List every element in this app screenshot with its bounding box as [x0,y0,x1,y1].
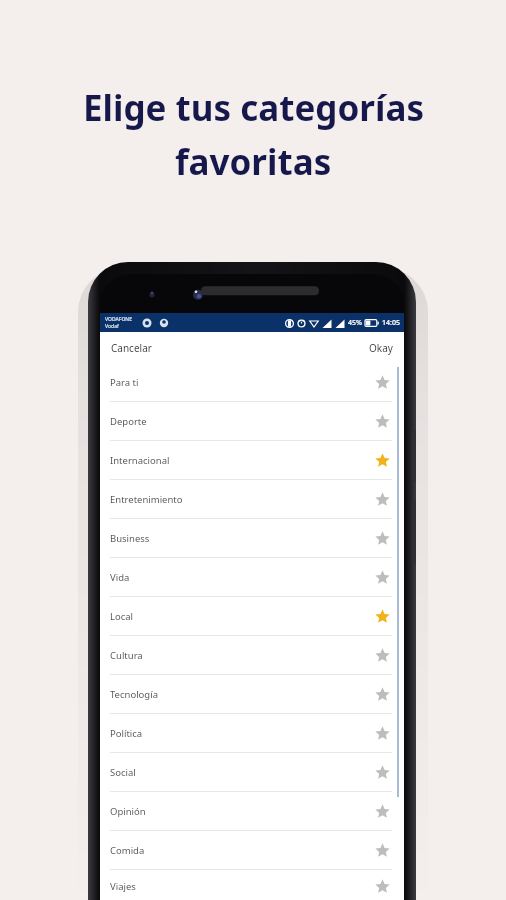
button[interactable]: Vida [100,558,404,597]
button[interactable]: Okay [367,337,395,359]
button[interactable]: Local [100,597,404,636]
staticText: Deporte [110,415,147,428]
staticText: 45% [348,318,362,328]
staticText: Local [110,610,134,623]
staticText: Vodaf [105,323,119,330]
staticText: Comida [110,844,145,857]
other: Añadir a favoritos [372,684,392,704]
button[interactable]: Tecnología [100,675,404,714]
button[interactable]: Viajes [100,870,404,900]
staticText: Vida [110,571,130,584]
staticText: Para ti [110,376,139,389]
other: Añadir a favoritos [372,411,392,431]
button[interactable]: Deporte [100,402,404,441]
staticText: Business [110,532,150,545]
other: Añadir a favoritos [372,489,392,509]
staticText: Social [110,766,136,779]
other: Quitar de favoritos [372,450,392,470]
staticText: Okay [369,341,393,355]
other: Añadir a favoritos [372,801,392,821]
staticText: 14:05 [382,318,400,328]
staticText: Cultura [110,649,143,662]
button[interactable]: Opinión [100,792,404,831]
button[interactable]: Business [100,519,404,558]
button[interactable]: Comida [100,831,404,870]
staticText: Tecnología [110,688,158,701]
button[interactable]: Entretenimiento [100,480,404,519]
staticText: Cancelar [111,341,152,355]
staticText: Entretenimiento [110,493,183,506]
other: Añadir a favoritos [372,567,392,587]
staticText: Elige tus categorías [83,84,424,132]
other: Añadir a favoritos [372,840,392,860]
staticText: Política [110,727,143,740]
staticText: VODAFONE [105,316,133,323]
staticText: Viajes [110,880,136,893]
other: Quitar de favoritos [372,606,392,626]
other: Añadir a favoritos [372,528,392,548]
other: Añadir a favoritos [372,723,392,743]
button[interactable]: Cancelar [109,337,154,359]
staticText: Opinión [110,805,146,818]
other: Añadir a favoritos [372,372,392,392]
other: Añadir a favoritos [372,876,392,896]
button[interactable]: Para ti [100,363,404,402]
other: Añadir a favoritos [372,645,392,665]
button[interactable]: Política [100,714,404,753]
other: Añadir a favoritos [372,762,392,782]
button[interactable]: Cultura [100,636,404,675]
button[interactable]: Social [100,753,404,792]
staticText: Internacional [110,454,170,467]
button[interactable]: Internacional [100,441,404,480]
staticText: favoritas [175,138,332,186]
